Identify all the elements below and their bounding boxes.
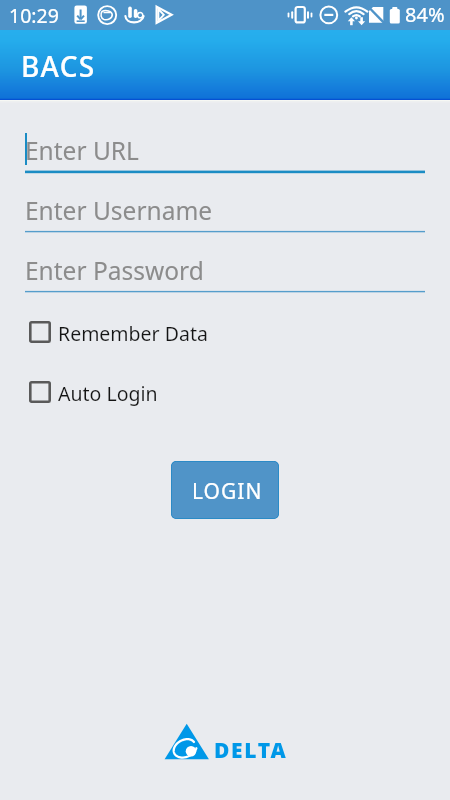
staticText: 84% — [405, 1, 445, 28]
staticText: Enter Username — [25, 194, 213, 227]
button[interactable]: Remember Data — [29, 321, 289, 351]
staticText: Auto Login — [58, 380, 158, 407]
button[interactable]: Enter Username — [25, 193, 425, 233]
staticText: Enter Password — [25, 254, 204, 287]
staticText: Remember Data — [58, 320, 208, 347]
button[interactable]: Auto Login — [29, 381, 289, 411]
staticText: DELTA — [214, 736, 288, 765]
button[interactable]: Enter URL — [25, 133, 425, 173]
staticText: BACS — [21, 47, 96, 85]
button[interactable]: Enter Password — [25, 253, 425, 293]
staticText: Enter URL — [25, 134, 139, 167]
staticText: LOGIN — [192, 477, 263, 506]
button[interactable]: LOGIN — [171, 461, 279, 519]
staticText: 10:29 — [9, 2, 59, 29]
